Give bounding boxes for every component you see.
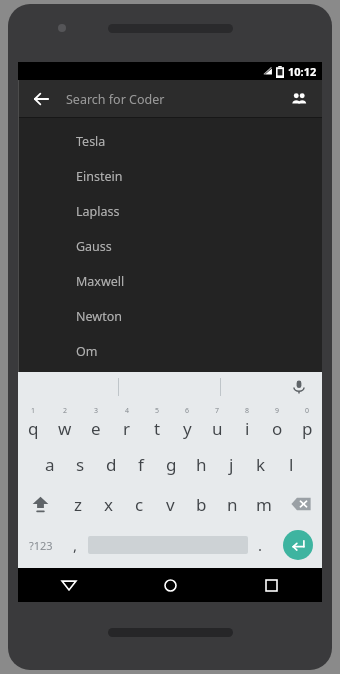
staticText: w (58, 417, 72, 440)
staticText: Tesla (76, 133, 106, 150)
staticText: 9 (275, 406, 280, 416)
staticText: 1 (31, 406, 36, 416)
button[interactable]: g (156, 444, 186, 484)
staticText: 5 (155, 406, 160, 416)
button[interactable]: 2 (49, 402, 80, 444)
staticText: 10:12 (288, 64, 317, 79)
button[interactable]: k (246, 444, 276, 484)
button[interactable]: Einstein (18, 159, 322, 194)
button[interactable]: l (276, 444, 306, 484)
staticText: Maxwell (76, 273, 125, 290)
button[interactable]: h (186, 444, 216, 484)
staticText: Einstein (76, 168, 123, 185)
button[interactable]: , (63, 524, 88, 566)
button[interactable]: 1 (18, 402, 49, 444)
staticText: u (212, 417, 223, 440)
staticText: x (104, 493, 113, 516)
staticText: k (256, 453, 266, 476)
button[interactable]: Tesla (18, 124, 322, 159)
button[interactable]: Back (18, 568, 120, 602)
button[interactable]: f (126, 444, 156, 484)
button[interactable]: b (186, 484, 217, 524)
staticText: Newton (76, 308, 122, 325)
button[interactable]: 4 (111, 402, 142, 444)
staticText: a (45, 453, 55, 476)
button[interactable]: Laplass (18, 194, 322, 229)
staticText: z (74, 493, 82, 516)
staticText: y (183, 417, 192, 440)
button[interactable]: 5 (142, 402, 172, 444)
staticText: i (245, 417, 250, 440)
button[interactable]: m (248, 484, 279, 524)
button[interactable]: z (62, 484, 93, 524)
staticText: l (289, 453, 294, 476)
button[interactable]: 3 (80, 402, 111, 444)
staticText: d (106, 453, 117, 476)
button[interactable]: Back (28, 86, 54, 112)
button[interactable]: Om (18, 334, 322, 369)
staticText: s (76, 453, 85, 476)
button[interactable]: a (34, 444, 65, 484)
button[interactable]: 7 (202, 402, 232, 444)
staticText: . (258, 535, 263, 555)
button[interactable]: Recents (221, 568, 322, 602)
staticText: f (138, 453, 144, 476)
staticText: n (227, 493, 238, 516)
staticText: Om (76, 343, 98, 360)
staticText: o (272, 417, 283, 440)
staticText: c (135, 493, 144, 516)
button[interactable]: 9 (262, 402, 292, 444)
staticText: h (196, 453, 207, 476)
staticText: j (229, 453, 234, 476)
button[interactable]: j (216, 444, 246, 484)
button[interactable]: 0 (292, 402, 322, 444)
staticText: 8 (245, 406, 250, 416)
staticText: 0 (305, 406, 310, 416)
button[interactable]: Maxwell (18, 264, 322, 299)
button[interactable]: s (65, 444, 96, 484)
staticText: p (302, 417, 313, 440)
button[interactable]: Back (18, 80, 322, 118)
button[interactable]: ?123 (18, 524, 63, 566)
staticText: b (196, 493, 207, 516)
button[interactable]: 6 (172, 402, 202, 444)
staticText: Laplass (76, 203, 120, 220)
button[interactable]: Enter (283, 530, 313, 560)
button[interactable]: 8 (232, 402, 262, 444)
staticText: 2 (63, 406, 68, 416)
staticText: g (166, 453, 177, 476)
button[interactable]: n (217, 484, 248, 524)
staticText: e (91, 417, 101, 440)
staticText: m (256, 493, 272, 516)
staticText: , (73, 535, 78, 555)
button[interactable]: Contacts (286, 86, 312, 112)
staticText: 4 (125, 406, 130, 416)
button[interactable]: Backspace (279, 484, 322, 524)
staticText: r (123, 417, 131, 440)
staticText: 3 (94, 406, 99, 416)
button[interactable]: x (93, 484, 124, 524)
button[interactable]: Voice input (288, 376, 310, 398)
button[interactable]: c (124, 484, 155, 524)
button[interactable]: Shift (18, 484, 62, 524)
staticText: Gauss (76, 238, 112, 255)
staticText: q (28, 417, 39, 440)
staticText: 6 (185, 406, 190, 416)
staticText: v (166, 493, 175, 516)
staticText: ?123 (29, 538, 53, 553)
button[interactable]: Newton (18, 299, 322, 334)
button[interactable]: . (248, 524, 273, 566)
button[interactable]: v (155, 484, 186, 524)
button[interactable]: d (96, 444, 126, 484)
button[interactable]: Gauss (18, 229, 322, 264)
button[interactable]: Home (120, 568, 221, 602)
staticText: 7 (215, 406, 220, 416)
staticText: Search for Coder (66, 91, 165, 108)
staticText: t (154, 417, 161, 440)
